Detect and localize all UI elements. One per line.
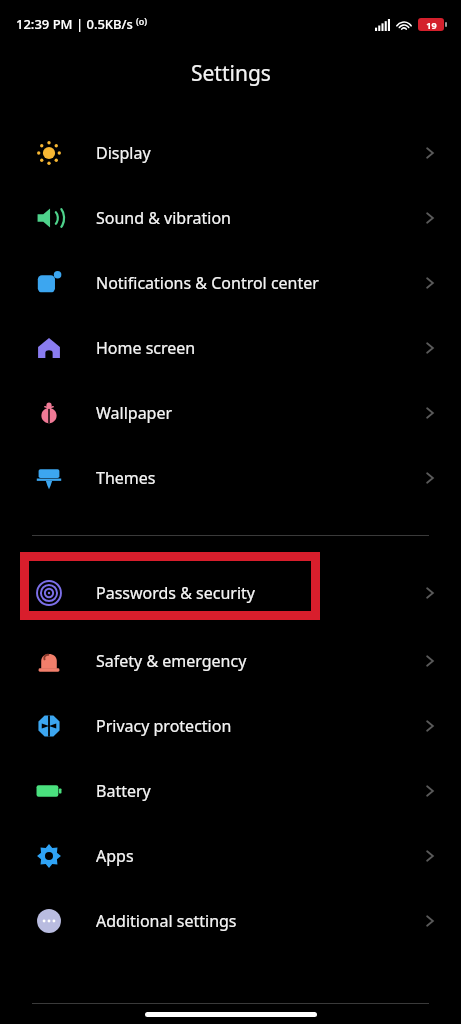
- staticText: 19: [426, 19, 437, 31]
- button[interactable]: Additional settings: [0, 888, 461, 953]
- button[interactable]: Home screen: [0, 315, 461, 380]
- staticText: Settings: [191, 59, 271, 88]
- button[interactable]: Privacy protection: [0, 693, 461, 758]
- staticText: 12:39 PM | 0.5KB/s: [16, 15, 133, 33]
- staticText: Additional settings: [96, 910, 421, 932]
- staticText: Display: [96, 142, 421, 164]
- button[interactable]: Wallpaper: [0, 380, 461, 445]
- button[interactable]: Display: [0, 120, 461, 185]
- button[interactable]: Themes: [0, 445, 461, 510]
- staticText: Sound & vibration: [96, 207, 421, 229]
- staticText: Home screen: [96, 337, 421, 359]
- staticText: Battery: [96, 780, 421, 802]
- button[interactable]: Battery: [0, 758, 461, 823]
- button[interactable]: Apps: [0, 823, 461, 888]
- staticText: (o): [136, 15, 148, 27]
- staticText: Passwords & security: [96, 582, 421, 604]
- staticText: Themes: [96, 467, 421, 489]
- button[interactable]: Sound & vibration: [0, 185, 461, 250]
- button[interactable]: Safety & emergency: [0, 628, 461, 693]
- button[interactable]: Passwords & security: [0, 560, 461, 625]
- staticText: Safety & emergency: [96, 650, 421, 672]
- staticText: Privacy protection: [96, 715, 421, 737]
- staticText: Apps: [96, 845, 421, 867]
- button[interactable]: Notifications & Control center: [0, 250, 461, 315]
- staticText: Notifications & Control center: [96, 272, 421, 294]
- staticText: Wallpaper: [96, 402, 421, 424]
